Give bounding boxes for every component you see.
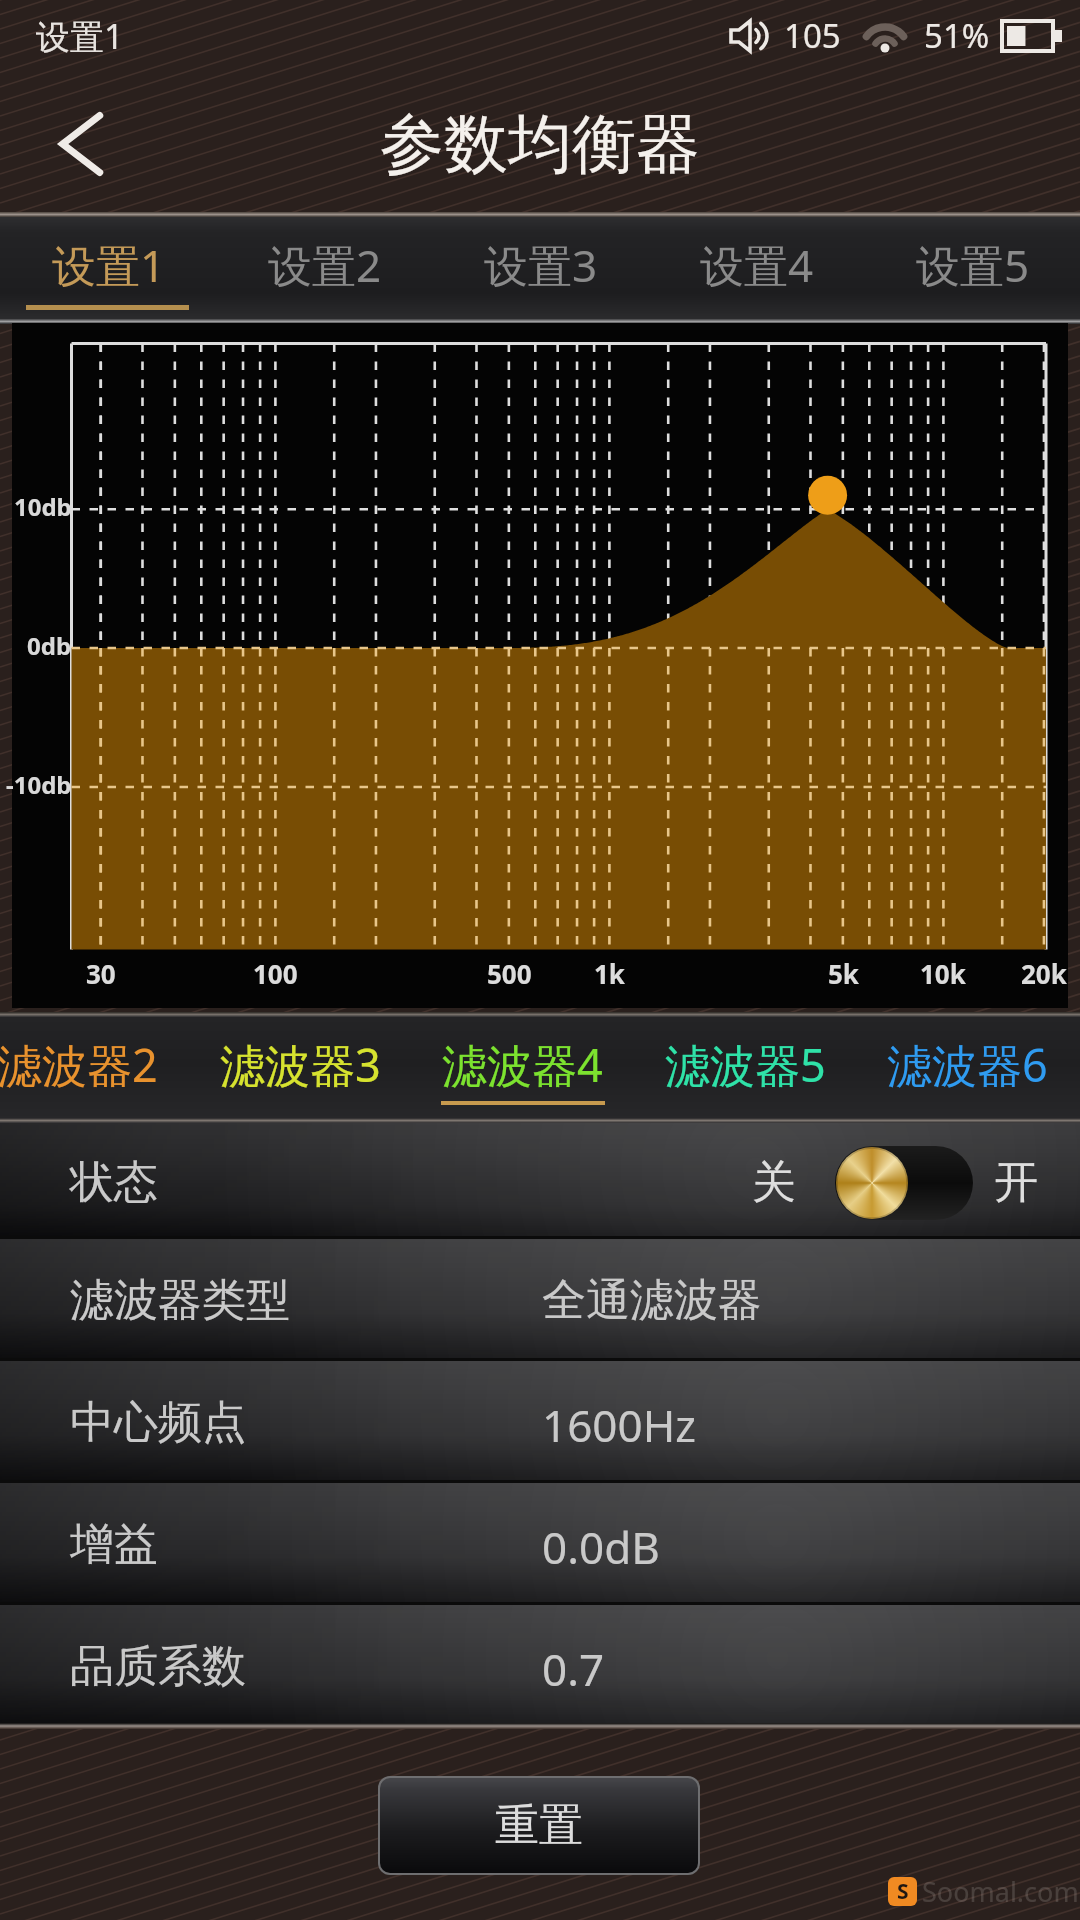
staticText: S bbox=[897, 1877, 909, 1906]
button[interactable]: 重置 bbox=[380, 1778, 698, 1873]
button[interactable]: 设置4 bbox=[649, 217, 865, 319]
staticText: 0db bbox=[27, 629, 72, 662]
staticText: 滤波器类型 bbox=[70, 1273, 290, 1328]
button[interactable]: 滤波器6 bbox=[855, 1017, 1079, 1120]
staticText: 51% bbox=[924, 13, 990, 58]
button[interactable]: 设置5 bbox=[865, 217, 1080, 319]
button[interactable]: 设置3 bbox=[433, 217, 649, 319]
button[interactable]: 设置2 bbox=[217, 217, 433, 319]
staticText: 105 bbox=[784, 13, 841, 58]
button[interactable]: Back bbox=[28, 94, 128, 194]
button[interactable]: 中心频点 bbox=[0, 1361, 1080, 1480]
staticText: 10db bbox=[14, 490, 72, 523]
button[interactable] bbox=[835, 1146, 973, 1220]
button[interactable]: 滤波器4 bbox=[410, 1017, 634, 1120]
staticText: 重置 bbox=[495, 1798, 583, 1853]
staticText: -10db bbox=[6, 768, 72, 801]
button[interactable]: 滤波器类型 bbox=[0, 1239, 1080, 1358]
staticText: 100 bbox=[253, 956, 298, 991]
staticText: 1600Hz bbox=[542, 1395, 696, 1455]
staticText: 500 bbox=[487, 956, 532, 991]
staticText: 20k bbox=[1021, 956, 1067, 991]
staticText: 0.7 bbox=[542, 1639, 605, 1699]
staticText: 设置3 bbox=[484, 235, 598, 295]
staticText: 滤波器3 bbox=[220, 1034, 381, 1095]
staticText: 中心频点 bbox=[70, 1395, 246, 1450]
staticText: 状态 bbox=[70, 1155, 158, 1210]
staticText: Soomal.com bbox=[922, 1873, 1079, 1910]
staticText: 关 bbox=[752, 1155, 796, 1210]
staticText: 滤波器5 bbox=[665, 1034, 826, 1095]
button[interactable]: 增益 bbox=[0, 1483, 1080, 1602]
staticText: 设置2 bbox=[268, 235, 382, 295]
staticText: 设置5 bbox=[916, 235, 1030, 295]
button[interactable]: 滤波器2 bbox=[0, 1017, 189, 1120]
staticText: 滤波器4 bbox=[442, 1034, 603, 1095]
button[interactable]: 状态 bbox=[0, 1123, 1080, 1236]
staticText: 开 bbox=[994, 1155, 1038, 1210]
button[interactable]: 滤波器5 bbox=[633, 1017, 857, 1120]
button[interactable]: 设置1 bbox=[1, 217, 217, 319]
staticText: 参数均衡器 bbox=[380, 104, 700, 185]
staticText: 30 bbox=[86, 956, 116, 991]
staticText: 设置1 bbox=[36, 13, 124, 59]
button[interactable]: 品质系数 bbox=[0, 1605, 1080, 1723]
button[interactable]: 滤波器3 bbox=[188, 1017, 412, 1120]
staticText: 10k bbox=[920, 956, 966, 991]
staticText: 设置4 bbox=[700, 235, 814, 295]
staticText: 设置1 bbox=[52, 235, 166, 295]
staticText: 品质系数 bbox=[70, 1639, 246, 1694]
staticText: 0.0dB bbox=[542, 1517, 660, 1577]
button[interactable]: Filter 4 gain handle bbox=[802, 469, 854, 521]
staticText: 滤波器2 bbox=[0, 1034, 158, 1095]
staticText: 1k bbox=[594, 956, 625, 991]
staticText: 5k bbox=[828, 956, 859, 991]
staticText: 全通滤波器 bbox=[542, 1273, 762, 1328]
staticText: 滤波器6 bbox=[887, 1034, 1048, 1095]
staticText: 增益 bbox=[70, 1517, 158, 1572]
